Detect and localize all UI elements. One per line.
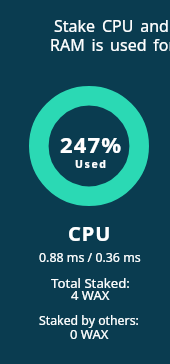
button[interactable]: CPU usage 247 percent	[29, 86, 149, 206]
staticText: Staked by others:	[39, 312, 139, 329]
staticText: 0 WAX	[70, 325, 109, 343]
staticText: 4 WAX	[71, 286, 110, 304]
staticText: Used	[75, 157, 108, 171]
staticText: Total Staked:	[51, 274, 130, 292]
staticText: CPU	[68, 220, 112, 247]
staticText: 0.88 ms / 0.36 ms	[39, 249, 141, 266]
staticText: Stake CPU and NET	[54, 15, 170, 37]
staticText: RAM is used for stor	[50, 34, 170, 56]
staticText: 247%	[60, 129, 123, 159]
